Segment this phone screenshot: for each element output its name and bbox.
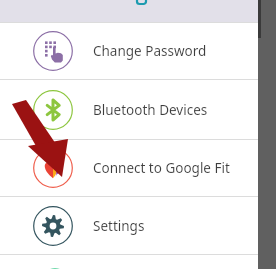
other: Annotation arrow pointing to Connect to … (0, 0, 276, 269)
button[interactable] (0, 255, 258, 269)
button[interactable]: Settings (0, 197, 258, 254)
button[interactable]: Connect to Google Fit (0, 140, 258, 196)
button[interactable]: Bluetooth Devices (0, 80, 258, 139)
button[interactable]: Change Password (0, 23, 258, 79)
staticText: Connect to Google Fit (93, 159, 230, 177)
staticText: Settings (93, 217, 145, 235)
staticText: Change Password (93, 42, 207, 60)
staticText: Bluetooth Devices (93, 101, 208, 119)
